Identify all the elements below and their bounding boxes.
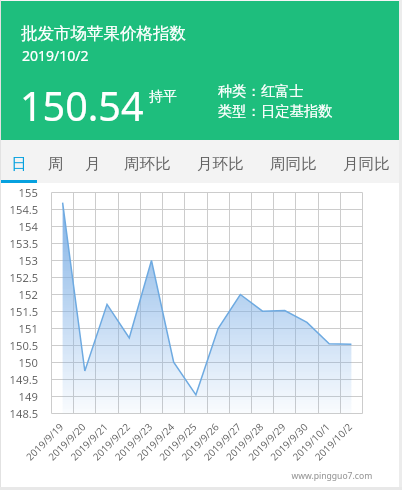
- staticText: 2019/10/2: [22, 46, 89, 65]
- staticText: 150.54: [20, 79, 144, 133]
- staticText: 种类：红富士: [218, 82, 304, 100]
- staticText: 周同比: [270, 154, 317, 174]
- button[interactable]: 月环比: [184, 140, 257, 183]
- staticText: 日: [11, 154, 27, 174]
- button[interactable]: 日: [0, 140, 37, 183]
- button[interactable]: 周同比: [257, 140, 330, 183]
- staticText: 批发市场苹果价格指数: [21, 23, 186, 44]
- staticText: 周: [48, 154, 64, 174]
- staticText: 月: [85, 154, 101, 174]
- staticText: 持平: [149, 88, 177, 106]
- button[interactable]: 月同比: [330, 140, 402, 183]
- staticText: 周环比: [124, 154, 171, 174]
- button[interactable]: 周环比: [111, 140, 184, 183]
- staticText: 类型：日定基指数: [218, 102, 333, 120]
- staticText: 月同比: [343, 154, 390, 174]
- button[interactable]: 周: [37, 140, 74, 183]
- button[interactable]: 月: [74, 140, 111, 183]
- staticText: 月环比: [197, 154, 244, 174]
